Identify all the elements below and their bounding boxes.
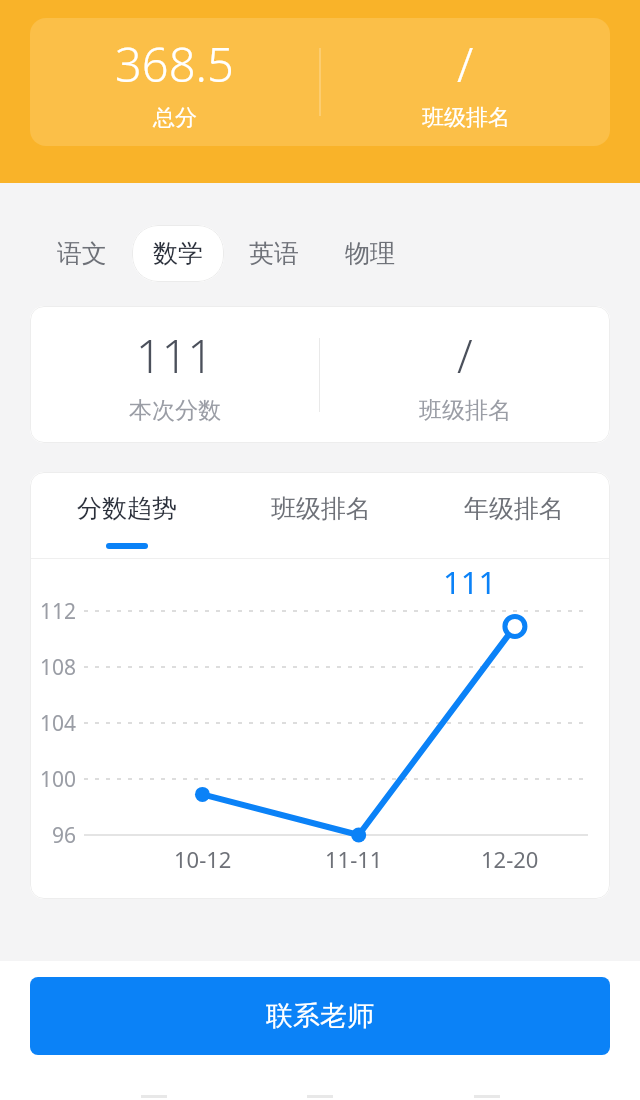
staticText: 96 xyxy=(30,821,76,850)
button[interactable]: 英语 xyxy=(228,225,320,282)
button[interactable]: 111 xyxy=(30,306,610,443)
staticText: 111 xyxy=(443,561,497,603)
button[interactable]: 分数趋势 xyxy=(30,472,224,558)
staticText: 368.5 xyxy=(115,32,234,96)
staticText: 111 xyxy=(136,325,214,386)
staticText: 物理 xyxy=(345,238,395,269)
button[interactable]: 语文 xyxy=(36,225,128,282)
staticText: 112 xyxy=(30,597,76,626)
staticText: 语文 xyxy=(57,238,107,269)
button[interactable]: 368.5 xyxy=(30,32,319,132)
button[interactable]: / xyxy=(321,32,610,132)
button[interactable]: 年级排名 xyxy=(417,472,610,558)
staticText: 联系老师 xyxy=(266,999,374,1033)
staticText: 班级排名 xyxy=(271,493,371,524)
staticText: 总分 xyxy=(153,104,197,132)
staticText: 分数趋势 xyxy=(77,493,177,524)
staticText: 108 xyxy=(30,653,76,682)
staticText: 年级排名 xyxy=(464,493,564,524)
staticText: / xyxy=(457,32,474,96)
staticText: 11-11 xyxy=(325,844,383,874)
staticText: 12-20 xyxy=(481,844,539,874)
button[interactable]: 数学 xyxy=(132,225,224,282)
button[interactable]: 联系老师 xyxy=(30,977,610,1055)
staticText: 10-12 xyxy=(174,844,232,874)
button[interactable]: 班级排名 xyxy=(224,472,417,558)
staticText: 班级排名 xyxy=(419,396,511,425)
staticText: 数学 xyxy=(153,238,203,269)
button[interactable]: 物理 xyxy=(324,225,416,282)
staticText: 班级排名 xyxy=(422,104,510,132)
staticText: 英语 xyxy=(249,238,299,269)
staticText: 104 xyxy=(30,709,76,738)
staticText: 100 xyxy=(30,765,76,794)
staticText: 本次分数 xyxy=(129,396,221,425)
staticText: / xyxy=(457,325,473,386)
